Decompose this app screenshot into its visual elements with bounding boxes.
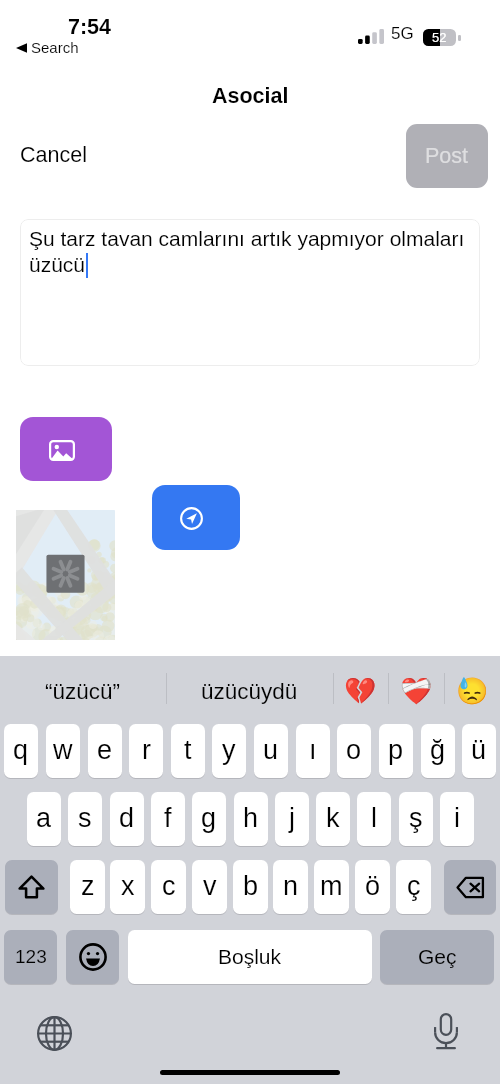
- staticText: q: [13, 735, 29, 765]
- staticText: 😓: [456, 676, 489, 706]
- button[interactable]: Pick image: [20, 417, 112, 481]
- button[interactable]: y: [212, 724, 246, 778]
- staticText: m: [320, 871, 343, 901]
- button[interactable]: t: [171, 724, 205, 778]
- staticText: x: [121, 871, 135, 901]
- staticText: t: [184, 735, 192, 765]
- button[interactable]: w: [46, 724, 80, 778]
- staticText: o: [346, 735, 362, 765]
- staticText: y: [222, 735, 236, 765]
- button[interactable]: Post: [406, 124, 488, 188]
- button[interactable]: ş: [399, 792, 433, 846]
- staticText: “üzücü”: [45, 679, 121, 704]
- button[interactable]: 💔: [333, 662, 388, 720]
- button[interactable]: Language: [32, 1011, 77, 1056]
- staticText: Şu tarz tavan camlarını artık yapmıyor o…: [29, 227, 470, 276]
- staticText: j: [289, 803, 295, 833]
- staticText: ö: [365, 871, 381, 901]
- button[interactable]: Attached photo: [16, 510, 115, 640]
- staticText: u: [263, 735, 279, 765]
- button[interactable]: Emoji: [66, 930, 119, 984]
- button[interactable]: Geç: [380, 930, 494, 984]
- button[interactable]: ü: [462, 724, 496, 778]
- staticText: 5G: [391, 24, 414, 43]
- staticText: ü: [471, 735, 487, 765]
- staticText: c: [162, 871, 176, 901]
- staticText: ğ: [430, 735, 446, 765]
- button[interactable]: x: [110, 860, 145, 914]
- staticText: k: [326, 803, 340, 833]
- staticText: i: [454, 803, 460, 833]
- button[interactable]: d: [110, 792, 144, 846]
- button[interactable]: v: [192, 860, 227, 914]
- staticText: ❤️‍🩹: [400, 676, 433, 706]
- button[interactable]: b: [233, 860, 268, 914]
- button[interactable]: p: [379, 724, 413, 778]
- button[interactable]: e: [88, 724, 122, 778]
- button[interactable]: Dictation: [423, 1009, 468, 1054]
- button[interactable]: Backspace: [444, 860, 496, 914]
- button[interactable]: u: [254, 724, 288, 778]
- staticText: l: [371, 803, 377, 833]
- staticText: a: [36, 803, 52, 833]
- button[interactable]: ❤️‍🩹: [388, 662, 444, 720]
- button[interactable]: h: [234, 792, 268, 846]
- button[interactable]: s: [68, 792, 102, 846]
- staticText: e: [97, 735, 113, 765]
- staticText: b: [243, 871, 259, 901]
- staticText: r: [142, 735, 151, 765]
- staticText: s: [78, 803, 92, 833]
- button[interactable]: ğ: [421, 724, 455, 778]
- staticText: f: [164, 803, 172, 833]
- staticText: w: [53, 735, 73, 765]
- button[interactable]: f: [151, 792, 185, 846]
- button[interactable]: z: [70, 860, 105, 914]
- button[interactable]: 😓: [444, 662, 500, 720]
- button[interactable]: ç: [396, 860, 431, 914]
- button[interactable]: Cancel: [12, 133, 94, 177]
- staticText: üzücüydü: [201, 679, 298, 704]
- staticText: g: [201, 803, 217, 833]
- staticText: Cancel: [20, 143, 87, 167]
- button[interactable]: i: [440, 792, 474, 846]
- staticText: d: [119, 803, 135, 833]
- button[interactable]: Shift: [5, 860, 58, 914]
- button[interactable]: üzücüydü: [166, 662, 333, 720]
- button[interactable]: 123: [4, 930, 57, 984]
- staticText: 52: [432, 30, 447, 45]
- staticText: Post: [425, 144, 469, 168]
- button[interactable]: “üzücü”: [0, 662, 166, 720]
- staticText: n: [283, 871, 299, 901]
- staticText: ç: [407, 871, 421, 901]
- staticText: v: [203, 871, 217, 901]
- button[interactable]: q: [4, 724, 38, 778]
- button[interactable]: j: [275, 792, 309, 846]
- staticText: z: [81, 871, 95, 901]
- button[interactable]: l: [357, 792, 391, 846]
- staticText: ş: [409, 803, 423, 833]
- staticText: ı: [309, 735, 317, 765]
- staticText: 123: [15, 946, 47, 967]
- button[interactable]: a: [27, 792, 61, 846]
- button[interactable]: ı: [296, 724, 330, 778]
- button[interactable]: g: [192, 792, 226, 846]
- button[interactable]: Şu tarz tavan camlarını artık yapmıyor o…: [20, 219, 480, 366]
- staticText: Boşluk: [218, 945, 282, 968]
- button[interactable]: Boşluk: [128, 930, 372, 984]
- staticText: p: [388, 735, 404, 765]
- button[interactable]: r: [129, 724, 163, 778]
- staticText: 7:54: [68, 15, 112, 39]
- button[interactable]: k: [316, 792, 350, 846]
- button[interactable]: Send: [152, 485, 240, 550]
- staticText: Asocial: [212, 84, 289, 108]
- staticText: Search: [31, 39, 79, 56]
- button[interactable]: ö: [355, 860, 390, 914]
- button[interactable]: c: [151, 860, 186, 914]
- button[interactable]: m: [314, 860, 349, 914]
- button[interactable]: o: [337, 724, 371, 778]
- staticText: Geç: [418, 945, 457, 968]
- staticText: h: [243, 803, 259, 833]
- staticText: 💔: [344, 676, 377, 706]
- button[interactable]: n: [273, 860, 308, 914]
